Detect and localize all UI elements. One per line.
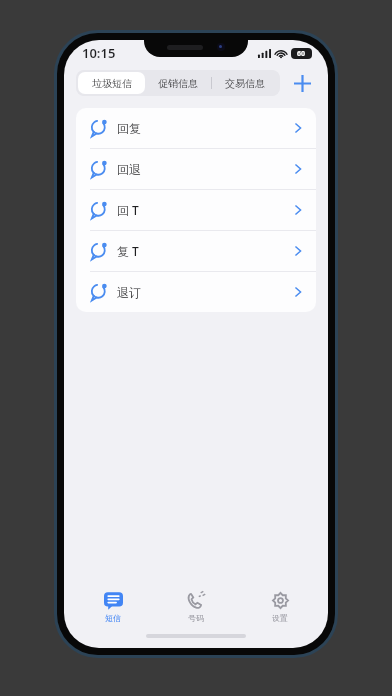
staticText: 短信: [105, 613, 121, 623]
staticText: 号码: [188, 613, 204, 623]
staticText: 垃圾短信: [92, 77, 132, 90]
button[interactable]: 复 T: [76, 231, 316, 271]
button[interactable]: 设置: [245, 588, 315, 626]
button[interactable]: Add: [288, 69, 316, 97]
button[interactable]: 回 T: [76, 190, 316, 230]
button[interactable]: 号码: [161, 588, 231, 626]
staticText: 设置: [272, 613, 288, 623]
staticText: 交易信息: [225, 77, 265, 90]
button[interactable]: 短信: [78, 588, 148, 626]
button[interactable]: 回退: [76, 149, 316, 189]
staticText: 10:15: [82, 44, 116, 62]
staticText: 回复: [117, 121, 294, 136]
staticText: 回退: [117, 162, 294, 177]
button[interactable]: 回复: [76, 108, 316, 148]
button[interactable]: 促销信息: [145, 72, 211, 94]
staticText: 促销信息: [158, 77, 198, 90]
button[interactable]: 退订: [76, 272, 316, 312]
staticText: 复 T: [117, 243, 294, 259]
button[interactable]: 交易信息: [212, 72, 278, 94]
staticText: 退订: [117, 285, 294, 300]
staticText: 回 T: [117, 202, 294, 218]
staticText: 60: [297, 49, 306, 59]
button[interactable]: 垃圾短信: [78, 72, 145, 94]
